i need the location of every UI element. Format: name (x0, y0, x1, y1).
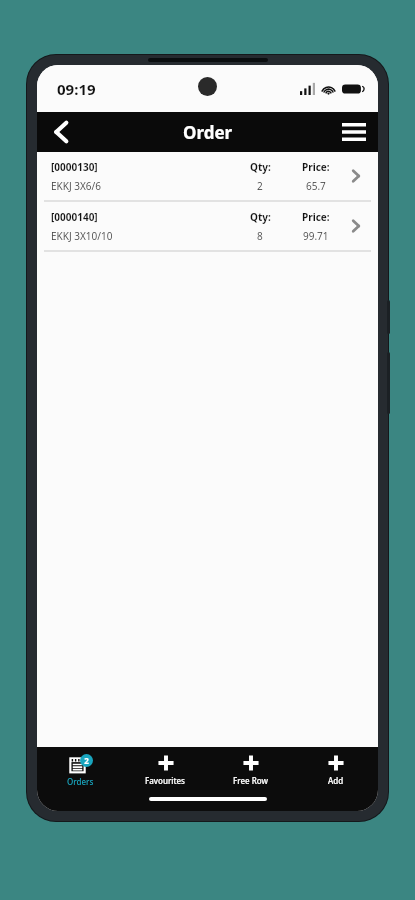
button[interactable]: Favourites (123, 747, 208, 793)
staticText: [0000130] (51, 160, 98, 174)
staticText: EKKJ 3X10/10 (51, 229, 113, 243)
staticText: Qty: (250, 210, 271, 224)
button[interactable]: [0000130] (37, 152, 378, 200)
staticText: Price: (302, 160, 330, 174)
staticText: EKKJ 3X6/6 (51, 179, 102, 193)
staticText: 09:19 (57, 79, 96, 99)
staticText: 65.7 (306, 179, 326, 193)
button[interactable]: Add (293, 747, 378, 793)
staticText: 2 (84, 755, 89, 766)
staticText: 99.71 (303, 229, 329, 243)
button[interactable]: [0000140] (37, 202, 378, 250)
staticText: Favourites (145, 775, 186, 786)
button[interactable]: 2 (37, 747, 123, 793)
button[interactable]: Free Row (208, 747, 293, 793)
button[interactable]: Menu (330, 112, 378, 152)
staticText: Qty: (250, 160, 271, 174)
staticText: 8 (257, 229, 263, 243)
staticText: Orders (67, 776, 94, 787)
staticText: 2 (257, 179, 263, 193)
staticText: [0000140] (51, 210, 98, 224)
staticText: Add (328, 775, 344, 786)
button[interactable]: Back (37, 112, 85, 152)
staticText: Free Row (233, 775, 268, 786)
staticText: Order (183, 121, 233, 144)
staticText: Price: (302, 210, 330, 224)
